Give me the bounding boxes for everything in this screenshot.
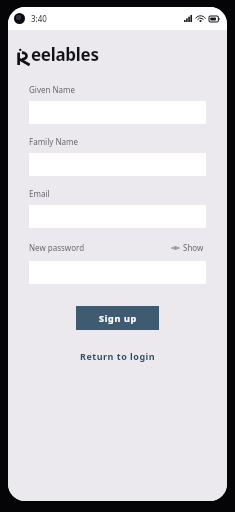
staticText: New password — [29, 242, 85, 253]
button[interactable]: Show password — [169, 240, 206, 255]
staticText: 3:40 — [31, 13, 47, 24]
staticText: Show — [183, 242, 204, 253]
button[interactable]: Return to login — [72, 347, 164, 365]
staticText: eelables — [31, 43, 99, 66]
other: Show password — [171, 245, 180, 251]
staticText: Given Name — [29, 84, 76, 95]
staticText: Family Name — [29, 136, 78, 147]
staticText: Email — [29, 188, 50, 199]
staticText: Return to login — [80, 350, 156, 362]
button[interactable]: Sign up — [76, 306, 159, 330]
staticText: Sign up — [99, 312, 137, 324]
